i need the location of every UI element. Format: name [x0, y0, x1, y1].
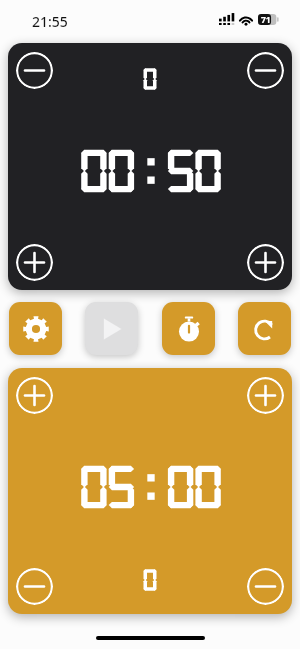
button[interactable]: Play — [85, 302, 138, 355]
button[interactable]: Decrease — [16, 52, 53, 89]
button[interactable]: Decrease — [16, 568, 53, 605]
button[interactable]: Decrease — [247, 568, 284, 605]
button[interactable]: Increase — [247, 377, 284, 414]
button[interactable]: Reset — [238, 302, 291, 355]
button[interactable]: Timer — [162, 302, 215, 355]
staticText: 71 — [261, 14, 271, 26]
button[interactable]: Increase — [16, 244, 53, 281]
button[interactable]: Decrease — [247, 52, 284, 89]
button[interactable]: Increase — [16, 377, 53, 414]
button[interactable]: Increase — [247, 244, 284, 281]
staticText: 21:55 — [32, 12, 68, 31]
button[interactable]: Settings — [9, 302, 62, 355]
